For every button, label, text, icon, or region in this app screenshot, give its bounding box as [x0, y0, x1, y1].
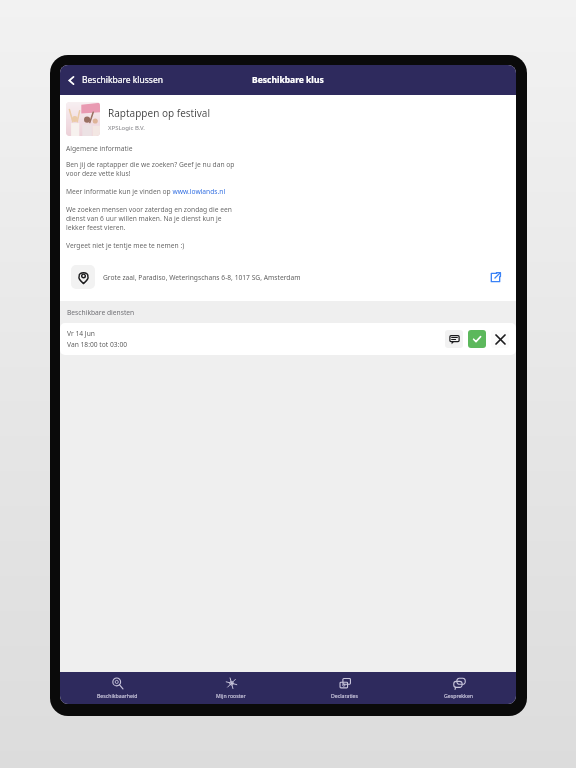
staticText: dienst van 6 uur willen maken. Na je die… [66, 214, 222, 223]
staticText: Vr 14 Jun [67, 329, 95, 338]
staticText: lekker feest vieren. [66, 223, 126, 232]
staticText: Beschikbare klus [252, 74, 324, 86]
staticText: Vergeet niet je tentje mee te nemen :) [66, 241, 185, 250]
button[interactable]: Gesprekken [402, 672, 516, 704]
button[interactable]: Beschikbare klussen [60, 70, 171, 90]
staticText: Beschikbaarheid [97, 692, 138, 699]
staticText: Gesprekken [444, 692, 474, 699]
button[interactable]: Declaraties [288, 672, 402, 704]
button[interactable]: Decline [491, 330, 509, 348]
button[interactable]: Mijn rooster [174, 672, 288, 704]
staticText: Algemene informatie [66, 144, 133, 153]
button[interactable]: Open in maps [485, 267, 505, 287]
button[interactable]: Chat [445, 330, 463, 348]
button[interactable]: Vr 14 Jun [60, 323, 516, 355]
staticText: Grote zaal, Paradiso, Weteringschans 6-8… [103, 273, 485, 282]
staticText: Beschikbare diensten [67, 308, 135, 317]
staticText: Declaraties [331, 692, 359, 699]
button[interactable]: Grote zaal, Paradiso, Weteringschans 6-8… [66, 260, 510, 294]
staticText: voor deze vette klus! [66, 169, 131, 178]
staticText: XPSLogic B.V. [108, 124, 145, 132]
staticText: Beschikbare klussen [82, 74, 163, 86]
staticText: Mijn rooster [216, 692, 246, 699]
button[interactable]: Beschikbaarheid [60, 672, 174, 704]
button[interactable]: Accept [468, 330, 486, 348]
staticText: We zoeken mensen voor zaterdag en zondag… [66, 205, 232, 214]
staticText: Ben jij de raptapper die we zoeken? Geef… [66, 160, 235, 169]
staticText: Raptappen op festival [108, 106, 211, 120]
staticText: Meer informatie kun je vinden op www.low… [66, 187, 226, 196]
staticText: Van 18:00 tot 03:00 [67, 340, 128, 349]
